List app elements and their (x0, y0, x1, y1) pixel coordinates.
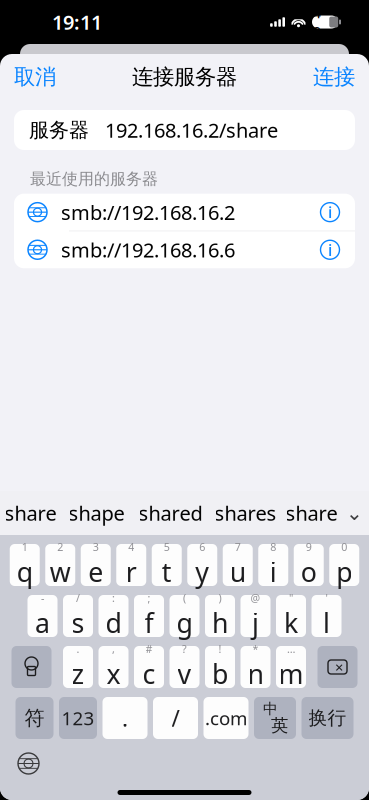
button[interactable]: ! (205, 646, 235, 688)
staticText: o (301, 554, 317, 589)
staticText: 取消 (14, 64, 56, 90)
staticText: share (285, 500, 337, 526)
staticText: 连接服务器 (132, 64, 237, 90)
button[interactable]: shared (132, 494, 208, 532)
button[interactable]: shares (208, 494, 282, 532)
button[interactable]: 3 (81, 544, 111, 586)
staticText: m (278, 656, 303, 691)
staticText: h (212, 605, 228, 640)
staticText: e (88, 554, 103, 589)
staticText: a (35, 605, 50, 640)
staticText: x (106, 656, 120, 691)
staticText: 连接 (313, 64, 355, 90)
staticText: i (328, 239, 332, 260)
button[interactable]: ) (205, 595, 235, 637)
button[interactable]: share (282, 494, 340, 532)
button[interactable]: 0 (329, 544, 359, 586)
button[interactable]: share (0, 494, 60, 532)
staticText: / (76, 591, 80, 605)
button[interactable]: Delete (317, 646, 357, 688)
button[interactable]: " (276, 595, 306, 637)
staticText: g (176, 605, 192, 640)
staticText: 192.168.16.2/share (105, 117, 278, 143)
button[interactable]: ( (169, 595, 199, 637)
staticText: 符 (24, 706, 44, 730)
staticText: * (252, 642, 258, 656)
staticText: 6 (199, 540, 205, 554)
staticText: ; (147, 591, 150, 605)
staticText: shape (68, 500, 124, 526)
button[interactable]: 4 (116, 544, 146, 586)
staticText: u (230, 554, 246, 589)
staticText: z (71, 656, 84, 691)
staticText: w (50, 554, 71, 589)
staticText: / (171, 703, 179, 733)
staticText: j (252, 605, 259, 640)
button[interactable]: shape (60, 494, 132, 532)
button[interactable]: * (240, 646, 270, 688)
staticText: 0 (341, 540, 347, 554)
button[interactable]: . (63, 646, 93, 688)
button[interactable]: ' (311, 595, 341, 637)
staticText: : (112, 591, 115, 605)
button[interactable]: Collapse suggestions (340, 494, 368, 532)
button[interactable]: ; (134, 595, 164, 637)
button[interactable]: 符 (15, 697, 53, 739)
staticText: 2 (57, 540, 63, 554)
staticText: i (328, 201, 332, 223)
button[interactable]: # (134, 646, 164, 688)
button[interactable]: 8 (258, 544, 288, 586)
button[interactable]: 9 (294, 544, 324, 586)
button[interactable]: 123 (59, 697, 97, 739)
button[interactable]: 1 (10, 544, 40, 586)
staticText: 中 (263, 700, 278, 718)
staticText: ! (218, 642, 221, 656)
button[interactable]: smb://192.168.16.2 (14, 194, 355, 231)
staticText: r (126, 554, 137, 589)
staticText: ( (183, 591, 186, 605)
staticText: ' (325, 591, 327, 605)
staticText: 4 (128, 540, 134, 554)
button[interactable]: 连接 (299, 54, 369, 100)
button[interactable]: smb://192.168.16.6 (14, 231, 355, 268)
button[interactable]: Shift (11, 646, 51, 688)
button[interactable]: 7 (223, 544, 253, 586)
staticText: b (212, 656, 228, 691)
button[interactable]: @ (240, 595, 270, 637)
staticText: 49 (313, 4, 321, 40)
button[interactable]: . (102, 697, 147, 739)
staticText: v (177, 656, 191, 691)
staticText: q (17, 554, 33, 589)
button[interactable]: … (276, 646, 306, 688)
staticText: 3 (93, 540, 99, 554)
staticText: 9 (306, 540, 312, 554)
staticText: ? (182, 642, 187, 656)
button[interactable]: Next keyboard (0, 745, 57, 782)
staticText: k (284, 605, 298, 640)
button[interactable]: 2 (45, 544, 75, 586)
staticText: 123 (61, 706, 94, 730)
button[interactable]: 取消 (0, 54, 70, 100)
button[interactable]: , (98, 646, 128, 688)
button[interactable]: / (63, 595, 93, 637)
button[interactable]: / (153, 697, 198, 739)
staticText: smb://192.168.16.6 (61, 236, 235, 263)
staticText: 5 (164, 540, 170, 554)
staticText: .com (205, 706, 247, 730)
button[interactable]: ? (169, 646, 199, 688)
staticText: i (270, 554, 277, 589)
staticText: n (247, 656, 263, 691)
button[interactable]: 换行 (301, 697, 353, 739)
button[interactable]: Switch language (254, 697, 296, 739)
button[interactable]: - (27, 595, 57, 637)
button[interactable]: : (98, 595, 128, 637)
button[interactable]: .com (203, 697, 248, 739)
button[interactable]: 5 (152, 544, 182, 586)
staticText: 服务器 (29, 118, 89, 142)
staticText: , (112, 642, 115, 656)
staticText: @ (250, 591, 260, 605)
staticText: 换行 (308, 706, 346, 729)
staticText: t (162, 554, 172, 589)
staticText: f (144, 605, 153, 640)
button[interactable]: 6 (187, 544, 217, 586)
